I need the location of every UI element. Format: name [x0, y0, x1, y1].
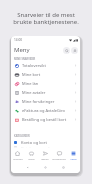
other: Hjem	[44, 166, 47, 169]
staticText: Bestilling og bestill kort	[22, 117, 67, 122]
button[interactable]: Kundeservice	[52, 148, 66, 162]
button[interactable]: Oversikt	[11, 148, 24, 162]
staticText: Mine kort	[22, 72, 41, 77]
staticText: Spare	[28, 157, 35, 160]
staticText: Oversikt	[13, 157, 23, 160]
staticText: MINE SNARVEIER	[14, 57, 36, 61]
staticText: Mine avtaler	[22, 90, 46, 95]
staticText: Snarveier til de mest brukte banktjenest…	[13, 11, 79, 26]
staticText: Konto og kort	[21, 140, 47, 145]
button[interactable]: Betale og overføre	[11, 146, 80, 152]
staticText: Mine lån	[22, 81, 39, 86]
button[interactable]: Konto og kort	[11, 138, 80, 146]
button[interactable]: Mine forsikringer	[11, 97, 80, 106]
staticText: Meny	[70, 157, 77, 160]
staticText: eFaktura og AvtaleGiro	[22, 108, 65, 113]
staticText: Betale	[41, 157, 49, 160]
staticText: KATEGORIER	[14, 134, 30, 138]
other: Tilbake	[26, 166, 29, 169]
button[interactable]: Søk	[63, 47, 70, 54]
button[interactable]: Profil	[71, 47, 78, 54]
button[interactable]: Mine avtaler	[11, 88, 80, 97]
button[interactable]: Bestilling og bestill kort	[11, 115, 80, 124]
staticText: 14:00	[14, 38, 23, 42]
button[interactable]: eFaktura og AvtaleGiro	[11, 106, 80, 115]
staticText: Mine forsikringer	[22, 99, 55, 104]
button[interactable]: Meny	[66, 148, 80, 162]
button[interactable]: Spare	[24, 148, 38, 162]
staticText: Totaloversikt	[22, 63, 46, 68]
button[interactable]: Mine lån	[11, 79, 80, 88]
other: Oversikt	[62, 166, 65, 169]
button[interactable]: Mine kort	[11, 70, 80, 79]
staticText: Meny	[14, 46, 30, 54]
button[interactable]: Totaloversikt	[11, 61, 80, 70]
staticText: Kundeservice	[52, 157, 66, 160]
button[interactable]: Betale	[38, 148, 52, 162]
